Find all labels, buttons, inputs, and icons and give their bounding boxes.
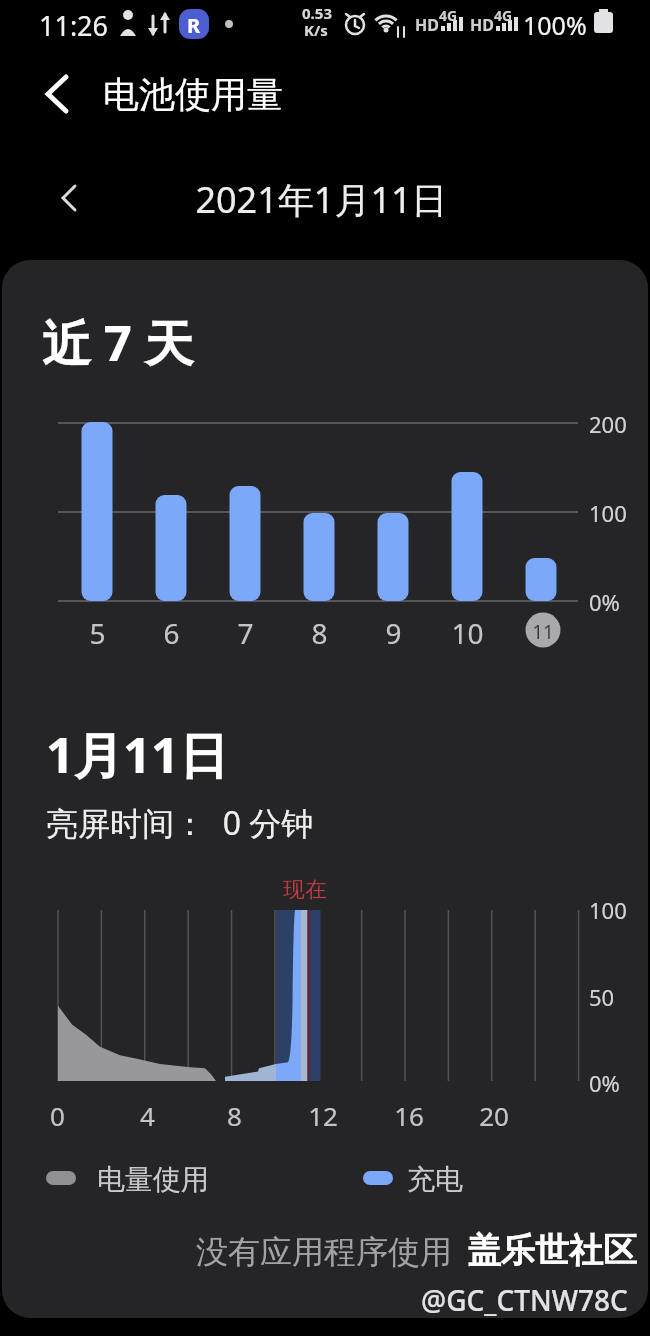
staticText: 9: [385, 614, 402, 652]
staticText: 近 7 天: [42, 309, 194, 376]
staticText: 8: [227, 1098, 242, 1133]
staticText: 电池使用量: [103, 72, 283, 117]
staticText: 11:26: [39, 7, 109, 44]
staticText: 盖乐世社区: [467, 1229, 637, 1272]
staticText: 0%: [589, 1068, 620, 1098]
staticText: 亮屏时间： 0 分钟: [46, 801, 314, 845]
staticText: 0.53: [302, 3, 332, 23]
staticText: 4: [140, 1098, 155, 1133]
staticText: 50: [589, 982, 615, 1012]
staticText: HD: [470, 14, 494, 36]
staticText: 2021年1月11日: [195, 175, 448, 224]
staticText: 0%: [589, 587, 620, 617]
staticText: 200: [589, 409, 627, 439]
staticText: 0: [50, 1098, 65, 1133]
staticText: 20: [479, 1098, 509, 1133]
staticText: 4G: [494, 6, 513, 25]
staticText: 100: [589, 498, 627, 528]
staticText: 1月11日: [46, 721, 229, 788]
staticText: 100%: [523, 8, 587, 42]
staticText: HD: [415, 14, 439, 36]
staticText: @GC_CTNW78C: [421, 1281, 628, 1319]
staticText: R: [187, 12, 201, 39]
staticText: 16: [394, 1098, 424, 1133]
staticText: 6: [163, 614, 180, 652]
staticText: K/s: [304, 20, 328, 40]
staticText: 4G: [439, 6, 458, 25]
staticText: 充电: [407, 1162, 463, 1197]
staticText: 没有应用程序使用: [196, 1232, 452, 1272]
staticText: 11: [532, 619, 554, 645]
button[interactable]: [50, 176, 94, 220]
staticText: 现在: [283, 876, 327, 904]
staticText: 10: [451, 614, 484, 652]
staticText: 100: [589, 895, 627, 925]
staticText: 5: [89, 614, 106, 652]
staticText: 7: [237, 614, 254, 652]
staticText: 12: [308, 1098, 338, 1133]
button[interactable]: 11: [513, 619, 573, 645]
button[interactable]: [34, 70, 86, 122]
staticText: 8: [311, 614, 328, 652]
staticText: 电量使用: [97, 1162, 209, 1197]
